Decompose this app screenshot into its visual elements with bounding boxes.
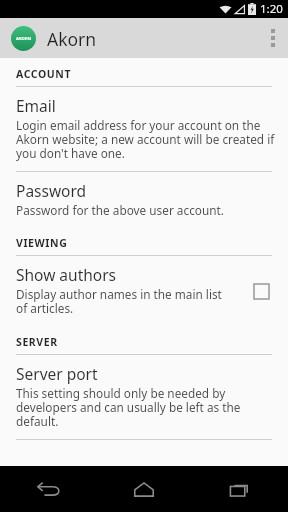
button[interactable]: Show authors checkbox bbox=[246, 276, 276, 306]
button[interactable]: Back bbox=[0, 466, 96, 512]
button[interactable]: More options bbox=[258, 18, 288, 58]
staticText: Login email address for your account on … bbox=[16, 117, 276, 162]
staticText: Server port bbox=[16, 363, 98, 384]
staticText: Akorn bbox=[47, 27, 97, 51]
button[interactable]: Email bbox=[0, 87, 288, 171]
button[interactable]: Home bbox=[96, 466, 192, 512]
staticText: This setting should only be needed by de… bbox=[16, 385, 276, 430]
staticText: Display author names in the main list of… bbox=[16, 286, 236, 317]
staticText: SERVER bbox=[16, 335, 58, 349]
button[interactable]: Server port bbox=[0, 355, 288, 439]
button[interactable]: Recent apps bbox=[192, 466, 288, 512]
staticText: VIEWING bbox=[16, 236, 68, 250]
staticText: AKORN bbox=[16, 36, 32, 42]
staticText: ACCOUNT bbox=[16, 67, 72, 81]
staticText: Email bbox=[16, 95, 56, 116]
staticText: Password for the above user account. bbox=[16, 202, 224, 218]
button[interactable]: Password bbox=[0, 172, 288, 227]
staticText: Show authors bbox=[16, 264, 117, 285]
button[interactable]: Show authors bbox=[0, 256, 288, 326]
staticText: Password bbox=[16, 180, 87, 201]
staticText: 1:20 bbox=[260, 1, 283, 17]
